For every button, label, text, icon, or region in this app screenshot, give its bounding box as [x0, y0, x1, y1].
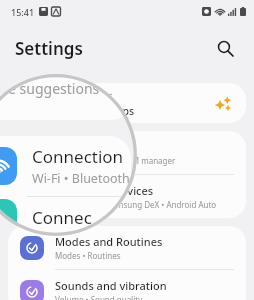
staticText: Connections — [32, 145, 131, 168]
staticText: 2 more suggestions — [20, 89, 113, 103]
button[interactable]: Connected devices — [8, 175, 246, 218]
staticText: 15:41 — [11, 6, 35, 18]
staticText: Connections — [55, 139, 121, 154]
staticText: Connected devices — [55, 183, 154, 198]
staticText: Modes and Routines — [55, 234, 163, 249]
staticText: Stay safe with backups — [20, 104, 135, 118]
staticText: Wi-Fi • Bluetooth — [32, 170, 130, 187]
staticText: more suggestions — [0, 79, 100, 98]
button[interactable]: Connections — [8, 131, 246, 175]
staticText: Sounds and vibration — [55, 278, 167, 293]
button[interactable]: Modes and Routines — [8, 226, 246, 270]
button[interactable]: 2 more suggestions — [8, 83, 246, 123]
staticText: Settings — [15, 37, 83, 60]
staticText: Quick Share • Samsung DeX • Android Auto — [55, 199, 217, 210]
button[interactable]: Search — [208, 31, 242, 65]
button[interactable]: Sounds and vibration — [8, 270, 246, 300]
staticText: Connec — [32, 206, 92, 229]
staticText: Wi-Fi • Bluetooth • SIM manager — [55, 155, 176, 166]
staticText: Modes • Routines — [55, 250, 121, 261]
staticText: Volume • Sound quality — [55, 294, 143, 300]
